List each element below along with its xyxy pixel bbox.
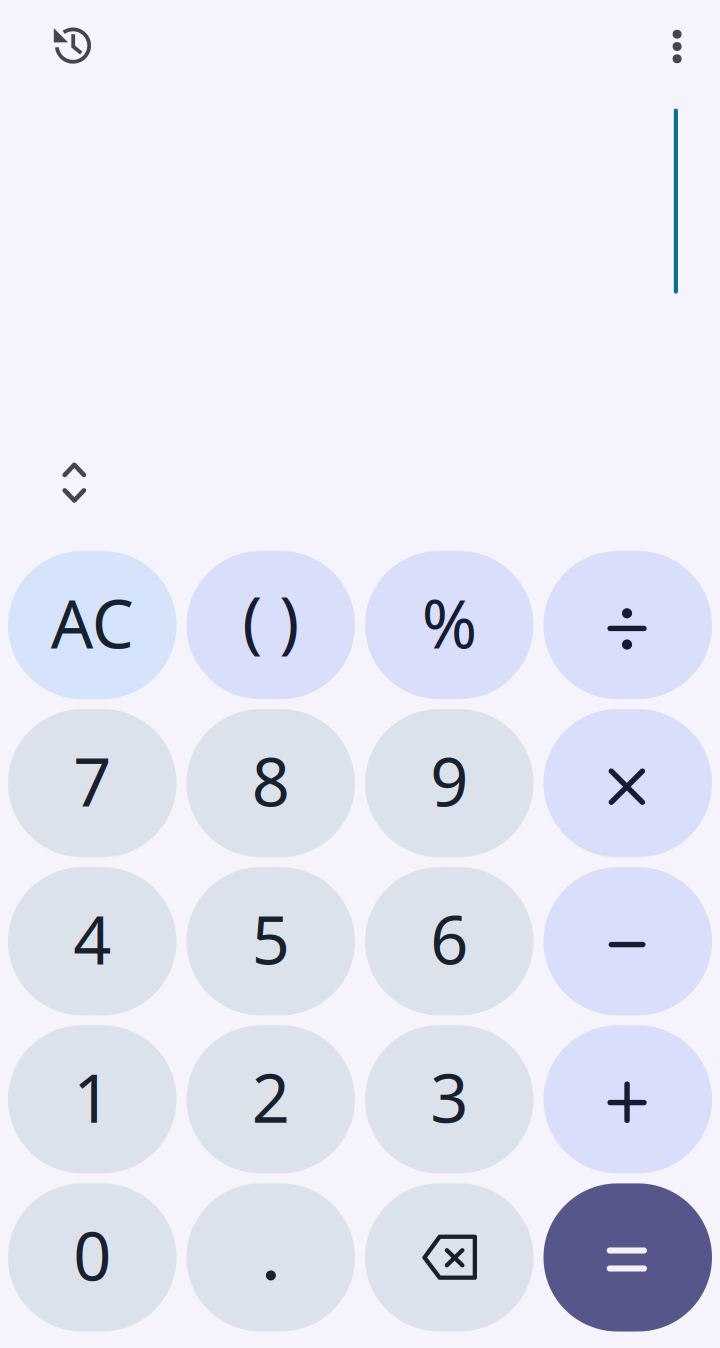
button[interactable]: More options <box>650 14 704 78</box>
staticText: 5 <box>252 894 290 983</box>
button[interactable]: Divide <box>543 551 712 699</box>
button[interactable]: 3 <box>365 1025 533 1173</box>
button[interactable]: 5 <box>186 867 355 1015</box>
button[interactable]: Plus <box>543 1025 712 1173</box>
button[interactable]: Backspace <box>365 1183 533 1331</box>
button[interactable]: Decimal point <box>186 1183 355 1331</box>
button[interactable]: AC <box>8 551 176 699</box>
button[interactable]: Equals <box>543 1183 712 1331</box>
button[interactable]: Minus <box>543 867 712 1015</box>
staticText: 6 <box>430 894 468 983</box>
button[interactable]: 2 <box>186 1025 355 1173</box>
button[interactable]: ( ) <box>186 551 355 699</box>
staticText: 1 <box>73 1053 111 1141</box>
button[interactable]: % <box>365 551 533 699</box>
button[interactable]: Expand <box>48 449 100 517</box>
button[interactable]: 8 <box>186 709 355 857</box>
staticText: 2 <box>252 1053 290 1141</box>
button[interactable]: 4 <box>8 867 176 1015</box>
staticText: 8 <box>252 736 290 825</box>
button[interactable]: 9 <box>365 709 533 857</box>
staticText: ( ) <box>242 575 299 664</box>
staticText: 0 <box>73 1211 111 1299</box>
staticText: 9 <box>430 736 468 825</box>
staticText: % <box>422 578 477 667</box>
button[interactable]: Multiply <box>543 709 712 857</box>
button[interactable]: 7 <box>8 709 176 857</box>
staticText: 3 <box>430 1053 468 1141</box>
staticText: 7 <box>73 736 111 825</box>
button[interactable]: 6 <box>365 867 533 1015</box>
staticText: 4 <box>73 894 111 983</box>
button[interactable]: 1 <box>8 1025 176 1173</box>
staticText: AC <box>51 578 134 667</box>
button[interactable]: 0 <box>8 1183 176 1331</box>
button[interactable]: History <box>39 10 107 78</box>
